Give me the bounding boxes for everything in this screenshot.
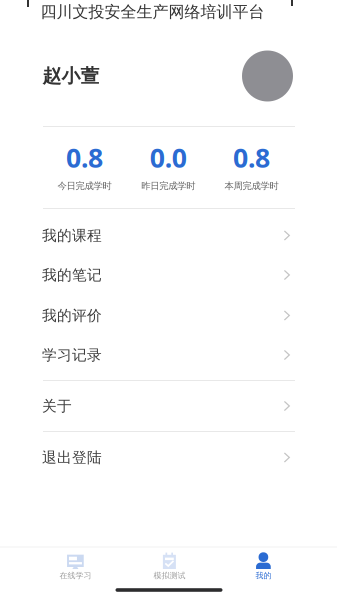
staticText: 我的课程 (42, 226, 102, 244)
staticText: 今日完成学时 (58, 180, 112, 192)
button[interactable]: 在线学习 (28, 550, 122, 581)
button[interactable]: 退出登陆 (42, 438, 290, 477)
staticText: 0.8 (66, 140, 103, 175)
staticText: 0.8 (233, 140, 270, 175)
staticText: 退出登陆 (42, 448, 102, 466)
staticText: 我的 (255, 571, 271, 580)
button[interactable]: 我的评价 (42, 296, 290, 335)
button[interactable]: 我的 (216, 550, 310, 581)
button[interactable]: 我的笔记 (42, 255, 290, 294)
staticText: 关于 (42, 397, 72, 415)
staticText: 在线学习 (59, 571, 91, 580)
staticText: 学习记录 (42, 346, 102, 364)
staticText: 我的评价 (42, 306, 102, 324)
staticText: 昨日完成学时 (141, 180, 195, 192)
button[interactable]: 我的课程 (42, 216, 290, 255)
staticText: 赵小萱 (42, 64, 99, 87)
button[interactable]: 关于 (42, 386, 290, 425)
staticText: 我的笔记 (42, 266, 102, 284)
staticText: 0.0 (150, 140, 187, 175)
button[interactable]: 模拟测试 (122, 550, 216, 581)
button[interactable]: 学习记录 (42, 335, 290, 374)
staticText: 本周完成学时 (225, 180, 279, 192)
staticText: 模拟测试 (153, 571, 185, 580)
staticText: 四川文投安全生产网络培训平台 (40, 2, 264, 22)
